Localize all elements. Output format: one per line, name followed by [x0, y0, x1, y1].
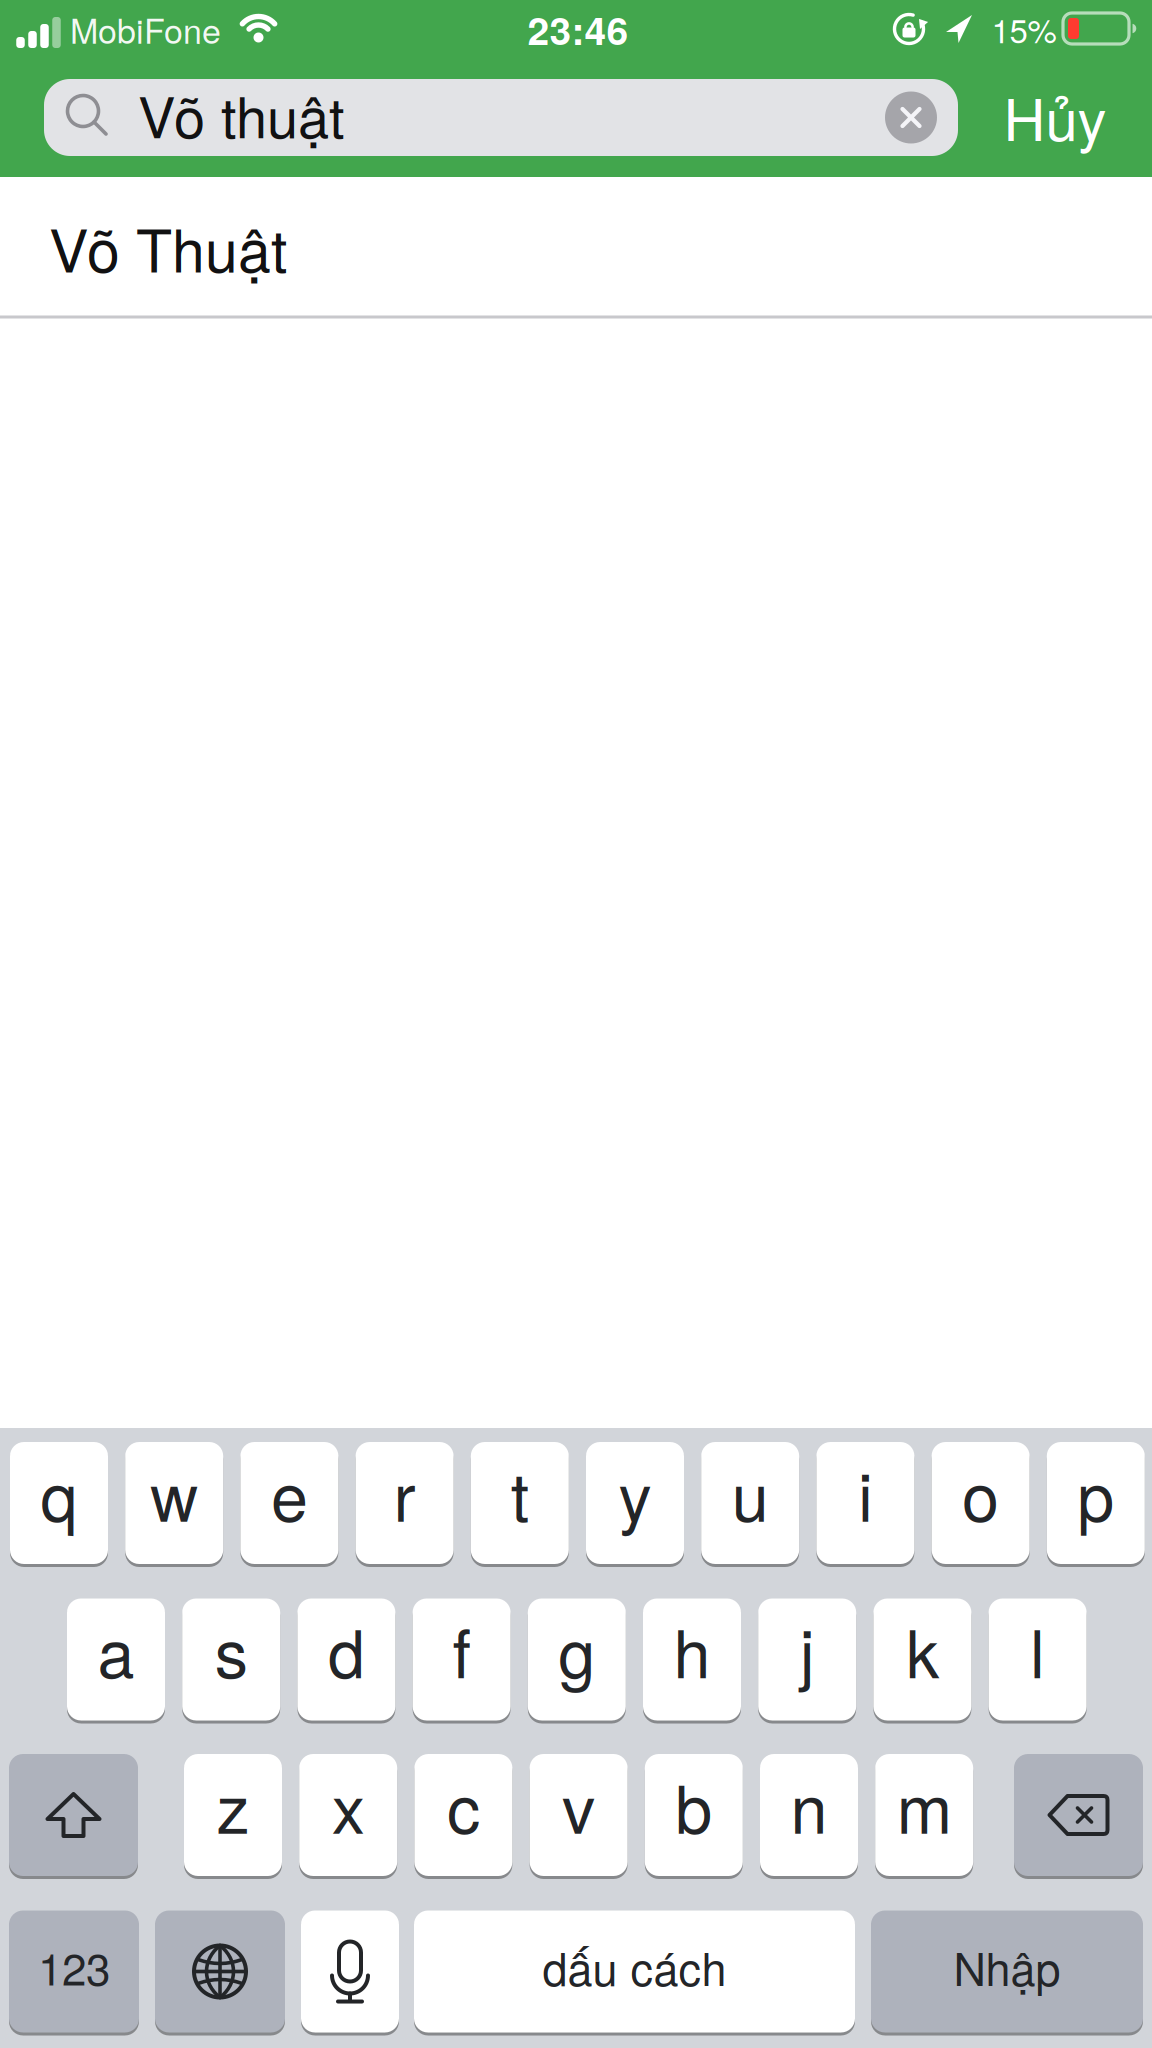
staticText: j — [800, 1602, 815, 1697]
button[interactable]: i — [816, 1442, 914, 1564]
staticText: 15% — [991, 5, 1056, 53]
staticText: y — [618, 1445, 651, 1541]
button[interactable]: Search — [44, 79, 958, 156]
button[interactable]: d — [297, 1598, 395, 1720]
button[interactable]: Nhập — [871, 1910, 1143, 2032]
button[interactable]: z — [184, 1754, 282, 1876]
staticText: q — [40, 1445, 77, 1541]
button[interactable]: Hủy — [970, 77, 1140, 154]
button[interactable]: s — [182, 1598, 280, 1720]
button[interactable]: dấu cách — [414, 1910, 855, 2032]
button[interactable]: x — [299, 1754, 397, 1876]
button[interactable]: q — [10, 1442, 108, 1564]
button[interactable]: Next keyboard — [155, 1910, 285, 2032]
staticText: a — [97, 1602, 134, 1697]
button[interactable]: Dictate — [301, 1910, 399, 2032]
staticText: u — [732, 1445, 769, 1541]
staticText: Võ thuật — [138, 74, 345, 154]
staticText: k — [906, 1602, 939, 1697]
staticText: i — [858, 1445, 873, 1541]
staticText: Nhập — [953, 1934, 1060, 1999]
button[interactable]: Shift — [9, 1754, 138, 1876]
staticText: g — [558, 1602, 595, 1697]
staticText: e — [271, 1445, 308, 1541]
staticText: t — [511, 1445, 529, 1541]
staticText: n — [790, 1757, 827, 1853]
button[interactable]: b — [645, 1754, 743, 1876]
button[interactable]: w — [125, 1442, 223, 1564]
staticText: z — [216, 1757, 249, 1853]
staticText: x — [332, 1757, 365, 1853]
button[interactable]: l — [989, 1598, 1087, 1720]
button[interactable]: k — [873, 1598, 971, 1720]
staticText: d — [328, 1602, 365, 1697]
button[interactable]: Numbers — [9, 1910, 139, 2032]
staticText: w — [150, 1445, 198, 1541]
button[interactable]: a — [67, 1598, 165, 1720]
button[interactable]: o — [932, 1442, 1030, 1564]
staticText: s — [215, 1602, 248, 1697]
staticText: c — [447, 1757, 480, 1853]
button[interactable]: y — [586, 1442, 684, 1564]
staticText: l — [1030, 1602, 1045, 1697]
button[interactable]: m — [875, 1754, 973, 1876]
button[interactable]: j — [758, 1598, 856, 1720]
staticText: Võ Thuật — [49, 205, 287, 289]
button[interactable]: n — [760, 1754, 858, 1876]
staticText: MobiFone — [70, 5, 221, 53]
button[interactable]: p — [1047, 1442, 1145, 1564]
staticText: 23:46 — [527, 1, 628, 57]
staticText: m — [897, 1757, 952, 1853]
button[interactable]: f — [413, 1598, 511, 1720]
button[interactable]: t — [471, 1442, 569, 1564]
staticText: f — [453, 1602, 471, 1697]
button[interactable]: Clear text — [885, 91, 937, 143]
button[interactable]: v — [530, 1754, 628, 1876]
button[interactable]: c — [414, 1754, 512, 1876]
staticText: b — [675, 1757, 712, 1853]
button[interactable]: Delete — [1014, 1754, 1143, 1876]
staticText: p — [1077, 1445, 1114, 1541]
staticText: 123 — [38, 1935, 110, 1998]
button[interactable]: u — [701, 1442, 799, 1564]
staticText: o — [962, 1445, 999, 1541]
staticText: dấu cách — [542, 1934, 726, 1999]
staticText: v — [562, 1757, 595, 1853]
staticText: r — [394, 1445, 416, 1541]
button[interactable]: h — [643, 1598, 741, 1720]
button[interactable]: r — [356, 1442, 454, 1564]
staticText: Hủy — [1003, 74, 1106, 158]
staticText: h — [673, 1602, 710, 1697]
button[interactable]: e — [240, 1442, 338, 1564]
button[interactable]: Võ Thuật — [49, 177, 1152, 316]
button[interactable]: g — [528, 1598, 626, 1720]
